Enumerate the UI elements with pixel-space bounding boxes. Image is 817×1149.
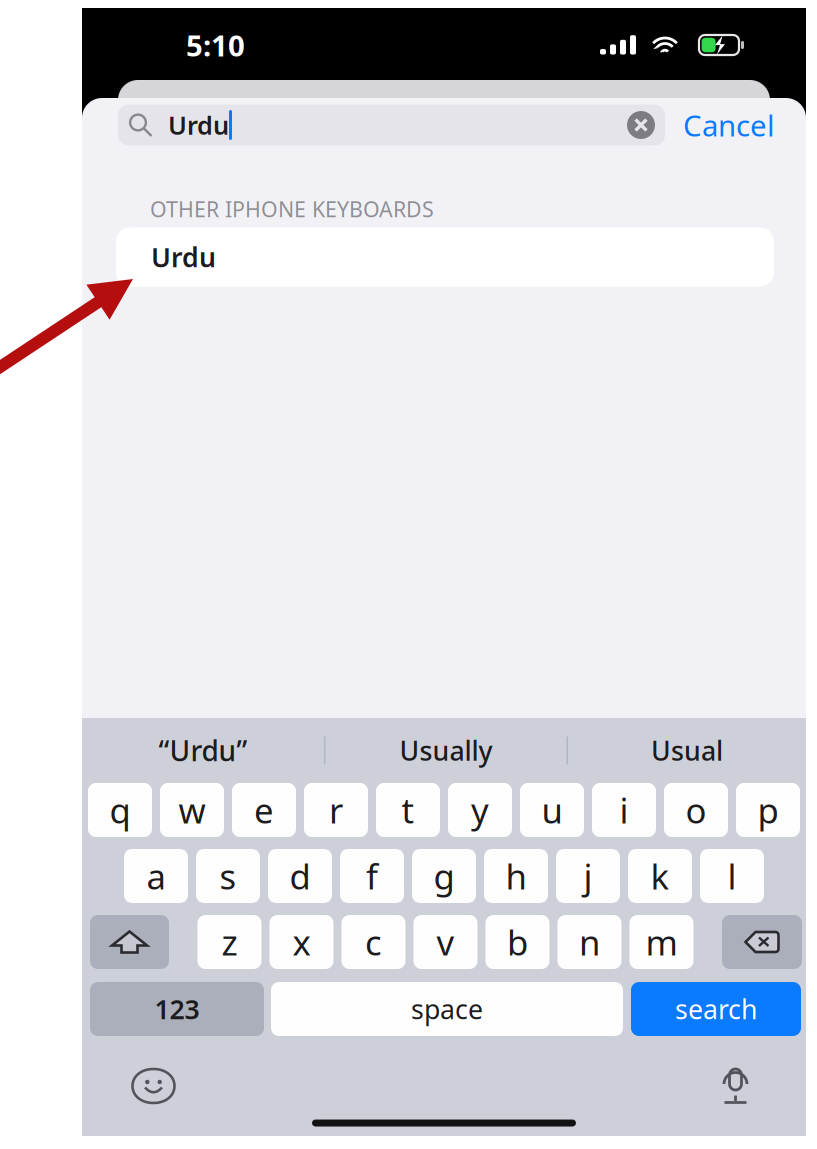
staticText: Urdu — [168, 108, 229, 142]
button[interactable]: f — [340, 849, 404, 903]
button[interactable]: y — [448, 783, 512, 837]
button[interactable]: d — [268, 849, 332, 903]
staticText: “Urdu” — [158, 732, 247, 769]
staticText: OTHER IPHONE KEYBOARDS — [150, 195, 434, 223]
button[interactable]: b — [485, 915, 549, 969]
button[interactable]: j — [556, 849, 620, 903]
button[interactable]: Cancel — [683, 103, 775, 147]
button[interactable]: r — [304, 783, 368, 837]
staticText: c — [365, 919, 382, 965]
button[interactable]: Urdu — [116, 227, 774, 286]
button[interactable]: Usually — [325, 723, 566, 777]
button[interactable]: Delete — [722, 915, 802, 969]
staticText: b — [507, 919, 528, 965]
staticText: v — [436, 919, 454, 965]
staticText: o — [685, 787, 706, 833]
staticText: u — [541, 787, 562, 833]
staticText: r — [329, 787, 343, 833]
staticText: j — [583, 853, 592, 899]
staticText: e — [254, 787, 274, 833]
button[interactable]: t — [376, 783, 440, 837]
staticText: g — [433, 853, 454, 899]
button[interactable]: m — [629, 915, 693, 969]
button[interactable]: q — [88, 783, 152, 837]
staticText: a — [146, 853, 165, 899]
button[interactable]: l — [700, 849, 764, 903]
staticText: m — [645, 919, 677, 965]
staticText: Cancel — [683, 105, 775, 144]
button[interactable]: 123 — [90, 982, 264, 1036]
staticText: i — [619, 787, 628, 833]
staticText: Usually — [399, 733, 492, 768]
button[interactable]: g — [412, 849, 476, 903]
staticText: search — [675, 991, 757, 1027]
button[interactable]: Usual — [568, 723, 806, 777]
staticText: x — [292, 919, 310, 965]
button[interactable]: p — [736, 783, 800, 837]
staticText: s — [219, 853, 236, 899]
button[interactable]: i — [592, 783, 656, 837]
staticText: t — [401, 787, 414, 833]
staticText: z — [221, 919, 237, 965]
staticText: l — [727, 853, 736, 899]
button[interactable]: u — [520, 783, 584, 837]
staticText: n — [579, 919, 600, 965]
staticText: d — [289, 853, 310, 899]
button[interactable]: Dictation — [719, 1066, 752, 1106]
staticText: 5:10 — [186, 25, 245, 64]
button[interactable]: k — [628, 849, 692, 903]
staticText: h — [505, 853, 526, 899]
staticText: q — [109, 787, 130, 833]
staticText: 123 — [154, 991, 199, 1027]
button[interactable]: w — [160, 783, 224, 837]
button[interactable]: a — [124, 849, 188, 903]
button[interactable]: v — [413, 915, 477, 969]
button[interactable]: o — [664, 783, 728, 837]
button[interactable]: Shift — [90, 915, 169, 969]
button[interactable]: Emoji keyboard — [131, 1067, 176, 1104]
button[interactable]: s — [196, 849, 260, 903]
staticText: f — [366, 853, 378, 899]
staticText: y — [471, 787, 489, 833]
staticText: Urdu — [151, 239, 216, 275]
staticText: space — [411, 991, 483, 1027]
button[interactable]: z — [197, 915, 261, 969]
button[interactable]: e — [232, 783, 296, 837]
staticText: p — [757, 787, 778, 833]
staticText: k — [650, 853, 669, 899]
staticText: w — [178, 787, 205, 833]
button[interactable]: h — [484, 849, 548, 903]
button[interactable]: “Urdu” — [82, 723, 324, 777]
button[interactable]: n — [557, 915, 621, 969]
button[interactable]: space — [271, 982, 623, 1036]
button[interactable]: search — [631, 982, 801, 1036]
button[interactable]: c — [341, 915, 405, 969]
staticText: Usual — [651, 733, 723, 768]
button[interactable]: x — [269, 915, 333, 969]
